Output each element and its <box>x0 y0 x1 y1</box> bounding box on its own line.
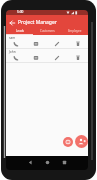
button[interactable] <box>26 54 46 62</box>
staticText: John <box>9 50 16 54</box>
button[interactable] <box>6 40 26 48</box>
button[interactable] <box>39 156 56 170</box>
staticText: Project Manager <box>18 19 57 26</box>
button[interactable]: Leads <box>6 27 34 35</box>
staticText: 5:00 <box>17 10 24 14</box>
button[interactable] <box>75 135 88 148</box>
staticText: Customers <box>40 29 55 33</box>
staticText: Leads <box>16 29 24 33</box>
button[interactable]: Employee <box>61 27 88 35</box>
button[interactable]: sam <box>6 35 88 48</box>
button[interactable] <box>67 54 88 62</box>
button[interactable] <box>6 54 26 62</box>
button[interactable] <box>22 156 39 170</box>
staticText: Employee <box>68 29 82 33</box>
button[interactable]: Customers <box>34 27 61 35</box>
staticText: sam <box>9 36 16 40</box>
button[interactable] <box>46 54 67 62</box>
button[interactable] <box>63 137 73 147</box>
button[interactable] <box>8 17 17 26</box>
button[interactable]: John <box>6 49 88 62</box>
button[interactable] <box>67 40 88 48</box>
button[interactable] <box>26 40 46 48</box>
button[interactable] <box>56 156 73 170</box>
button[interactable] <box>46 40 67 48</box>
